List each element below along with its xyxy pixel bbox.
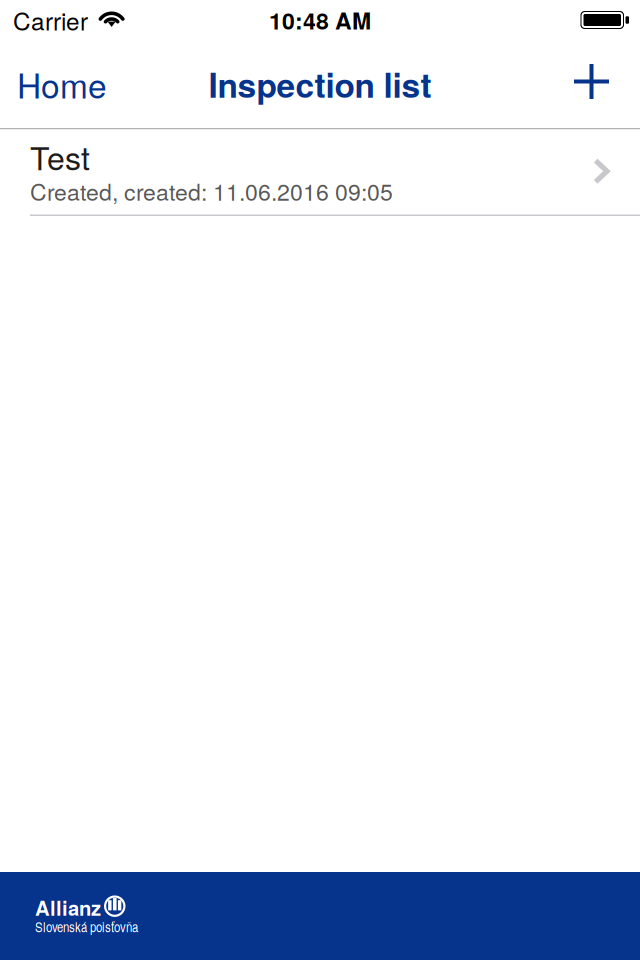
staticText: Test xyxy=(30,134,90,179)
staticText: Inspection list xyxy=(208,60,431,108)
button[interactable]: Home xyxy=(0,40,121,128)
staticText: Allianz xyxy=(35,893,101,922)
staticText: Carrier xyxy=(13,3,88,37)
staticText: Home xyxy=(17,60,107,108)
button[interactable]: Add inspection xyxy=(550,40,640,128)
staticText: 10:48 AM xyxy=(269,3,371,36)
staticText: Slovenská poisťovňa xyxy=(35,917,138,936)
button[interactable]: Test xyxy=(0,129,640,216)
staticText: Created, created: 11.06.2016 09:05 xyxy=(30,174,393,207)
